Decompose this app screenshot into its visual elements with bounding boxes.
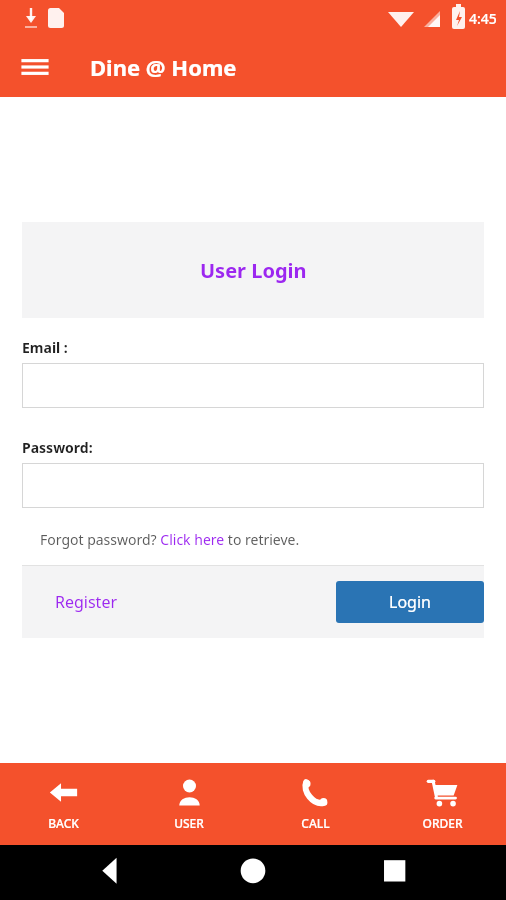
staticText: USER <box>174 815 204 831</box>
button[interactable]: Forgot password? Click here to retrieve. <box>40 530 300 549</box>
button[interactable]: CALL <box>252 763 379 845</box>
button[interactable]: Login <box>336 581 484 623</box>
button[interactable]: USER <box>126 763 252 845</box>
button[interactable] <box>22 463 484 508</box>
staticText: Email : <box>22 338 68 357</box>
staticText: CALL <box>301 815 330 831</box>
button[interactable] <box>22 363 484 408</box>
staticText: BACK <box>48 815 79 831</box>
staticText: 4:45 <box>469 9 497 28</box>
button[interactable]: ORDER <box>379 763 506 845</box>
staticText: User Login <box>200 257 307 284</box>
staticText: Dine @ Home <box>90 52 237 82</box>
staticText: Password: <box>22 438 93 457</box>
staticText: Login <box>389 591 431 613</box>
button[interactable]: BACK <box>0 763 126 845</box>
staticText: ORDER <box>422 815 463 831</box>
button[interactable]: Open navigation menu <box>13 45 57 89</box>
button[interactable]: User Login <box>22 222 484 318</box>
button[interactable]: Register <box>55 591 118 613</box>
